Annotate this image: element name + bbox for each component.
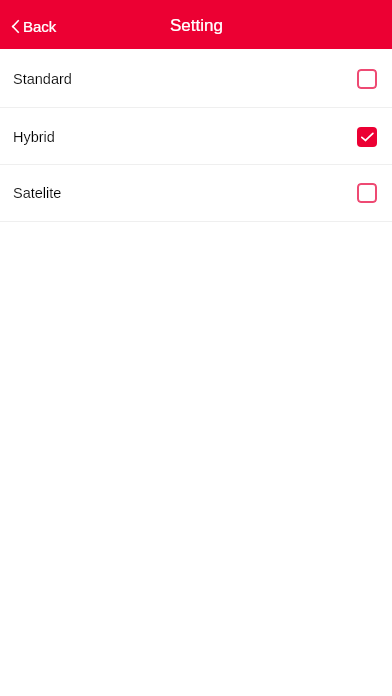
button[interactable]: Hybrid — [0, 108, 392, 164]
other: Not selected — [357, 183, 377, 203]
button[interactable]: Standard — [0, 49, 392, 107]
other: Back — [12, 20, 19, 33]
staticText: Standard — [13, 71, 72, 87]
staticText: Satelite — [13, 185, 62, 201]
other: Selected — [357, 127, 377, 147]
button[interactable]: Back — [8, 12, 65, 41]
button[interactable]: Satelite — [0, 165, 392, 221]
staticText: Hybrid — [13, 129, 55, 145]
staticText: Back — [23, 18, 57, 35]
staticText: Setting — [170, 16, 223, 35]
other: Not selected — [357, 69, 377, 89]
